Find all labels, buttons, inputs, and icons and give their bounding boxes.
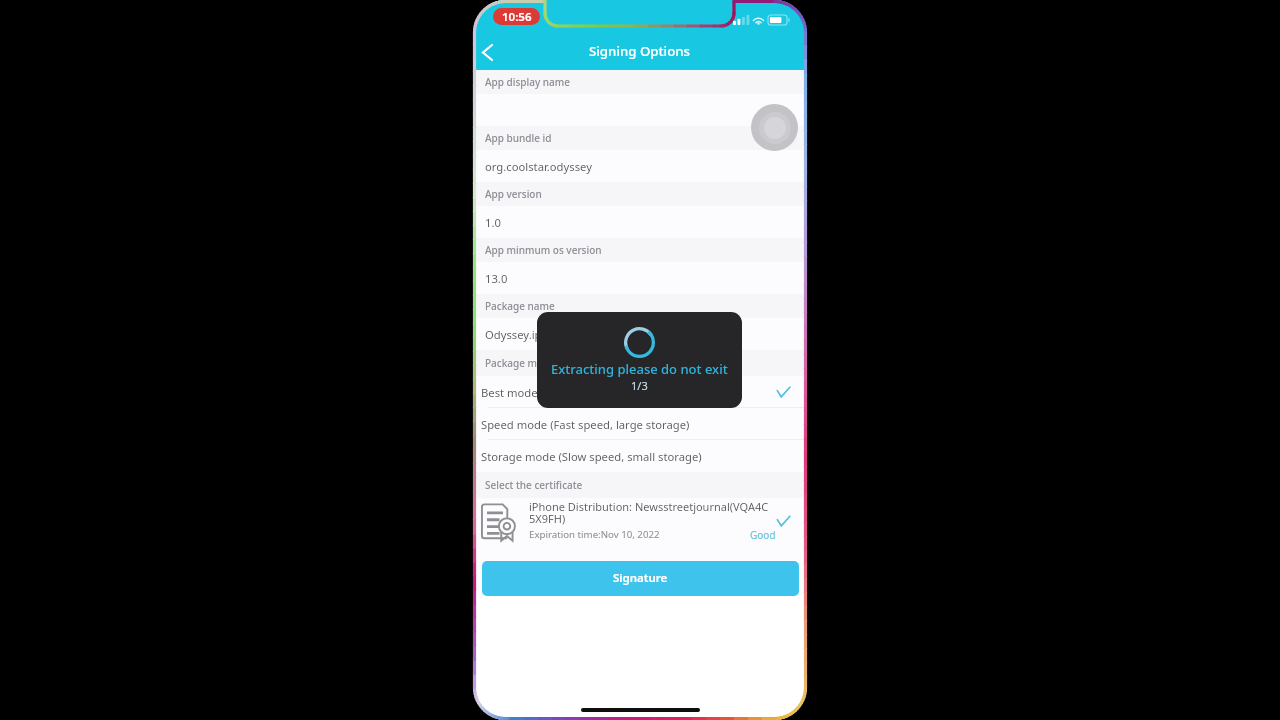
staticText: Odyssey.ipa: [485, 327, 548, 342]
staticText: Package name: [485, 299, 555, 313]
staticText: App bundle id: [485, 131, 552, 145]
button[interactable]: Speed mode (Fast speed, large storage): [475, 408, 805, 440]
staticText: 1/3: [631, 378, 648, 393]
staticText: Package mode: [485, 356, 556, 370]
staticText: 10:56: [502, 9, 532, 25]
staticText: Best mode: [481, 385, 538, 400]
staticText: Extracting please do not exit: [551, 360, 728, 378]
button[interactable]: Odyssey.ipa: [475, 318, 805, 350]
staticText: 1.0: [485, 215, 501, 230]
staticText: Select the certificate: [485, 478, 583, 492]
staticText: Signature: [613, 570, 668, 586]
button[interactable]: org.coolstar.odyssey: [475, 150, 805, 182]
button[interactable]: Back: [475, 36, 509, 69]
staticText: App display name: [485, 75, 571, 89]
staticText: 13.0: [485, 271, 508, 286]
staticText: Good: [750, 528, 776, 542]
staticText: Signing Options: [589, 42, 691, 60]
button[interactable]: Signature: [482, 561, 799, 596]
staticText: Expiration time:Nov 10, 2022: [529, 528, 660, 541]
staticText: iPhone Distribution: Newsstreetjournal(V…: [529, 499, 776, 526]
button[interactable]: 13.0: [475, 262, 805, 294]
button[interactable]: [475, 94, 805, 126]
button[interactable]: Storage mode (Slow speed, small storage): [475, 440, 805, 472]
button[interactable]: Best mode: [475, 376, 805, 408]
button[interactable]: AssistiveTouch: [751, 104, 798, 151]
staticText: Storage mode (Slow speed, small storage): [481, 449, 702, 464]
staticText: App minmum os version: [485, 243, 602, 257]
button[interactable]: 1.0: [475, 206, 805, 238]
staticText: org.coolstar.odyssey: [485, 159, 592, 174]
staticText: Speed mode (Fast speed, large storage): [481, 417, 690, 432]
button[interactable]: iPhone Distribution: Newsstreetjournal(V…: [475, 498, 805, 556]
staticText: App version: [485, 187, 542, 201]
